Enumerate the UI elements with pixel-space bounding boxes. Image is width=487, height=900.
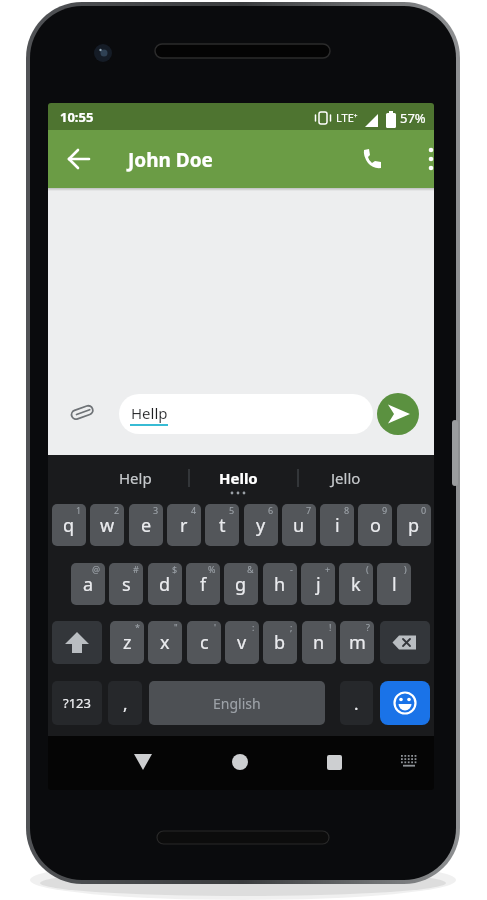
staticText: 6	[268, 504, 274, 516]
staticText: -	[290, 563, 293, 575]
button[interactable]: u	[282, 504, 316, 546]
staticText: y	[256, 513, 266, 538]
button[interactable]	[220, 746, 260, 780]
staticText: 8	[344, 504, 350, 516]
staticText: 3	[153, 504, 159, 516]
button[interactable]: g	[224, 563, 258, 605]
button[interactable]: Hello	[203, 461, 273, 495]
staticText: b	[274, 630, 286, 655]
staticText: ?123	[63, 694, 91, 712]
staticText: u	[293, 513, 305, 538]
staticText: i	[335, 513, 340, 538]
staticText: n	[313, 630, 325, 655]
button[interactable]: s	[109, 563, 143, 605]
staticText: &	[247, 563, 254, 575]
button[interactable]: .	[340, 681, 373, 725]
button[interactable]: x	[148, 621, 182, 664]
button[interactable]	[66, 396, 98, 428]
staticText: .	[354, 692, 359, 715]
button[interactable]: v	[225, 621, 259, 664]
staticText: 7	[306, 504, 312, 516]
button[interactable]: ,	[108, 681, 142, 725]
button[interactable]	[52, 621, 102, 664]
button[interactable]	[380, 681, 430, 725]
staticText: d	[159, 572, 171, 597]
button[interactable]: r	[167, 504, 201, 546]
staticText: m	[349, 630, 366, 655]
button[interactable]: ?123	[52, 681, 102, 725]
button[interactable]: Hellp	[119, 394, 373, 434]
button[interactable]: p	[397, 504, 431, 546]
staticText: 2	[114, 504, 120, 516]
button[interactable]: Jello	[316, 461, 376, 495]
staticText: r	[180, 513, 188, 538]
staticText: ?	[366, 621, 370, 633]
staticText: Jello	[331, 468, 361, 488]
button[interactable]: h	[263, 563, 297, 605]
button[interactable]: f	[186, 563, 220, 605]
button[interactable]: d	[148, 563, 182, 605]
button[interactable]	[355, 142, 389, 176]
staticText: Hello	[219, 468, 258, 488]
staticText: $	[172, 563, 178, 575]
button[interactable]: y	[244, 504, 278, 546]
button[interactable]: c	[187, 621, 221, 664]
staticText: g	[235, 572, 247, 597]
staticText: LTE⁺	[336, 110, 358, 125]
button[interactable]: l	[377, 563, 411, 605]
button[interactable]	[393, 748, 425, 776]
staticText: !	[329, 621, 332, 633]
button[interactable]: j	[301, 563, 335, 605]
staticText: Hellp	[131, 403, 168, 423]
button[interactable]: t	[205, 504, 239, 546]
staticText: o	[370, 513, 381, 538]
button[interactable]: Help	[105, 461, 165, 495]
button[interactable]	[418, 142, 434, 176]
button[interactable]: z	[110, 621, 144, 664]
button[interactable]: a	[71, 563, 105, 605]
staticText: 9	[382, 504, 388, 516]
staticText: '	[214, 621, 217, 633]
button[interactable]	[380, 621, 430, 664]
staticText: 4	[191, 504, 197, 516]
button[interactable]: k	[339, 563, 373, 605]
staticText: j	[316, 572, 321, 597]
button[interactable]	[314, 746, 354, 780]
staticText: 1	[76, 504, 82, 516]
staticText: x	[160, 630, 170, 655]
staticText: f	[200, 572, 207, 597]
staticText: 10:55	[60, 108, 94, 126]
staticText: q	[63, 513, 75, 538]
button[interactable]	[377, 393, 419, 435]
button[interactable]	[123, 746, 163, 780]
staticText: 5	[229, 504, 235, 516]
button[interactable]: n	[302, 621, 336, 664]
staticText: @	[92, 563, 101, 575]
button[interactable]: m	[340, 621, 374, 664]
button[interactable]: b	[263, 621, 297, 664]
staticText: "	[174, 621, 178, 633]
staticText: Help	[119, 468, 152, 488]
button[interactable]: w	[90, 504, 124, 546]
staticText: l	[392, 572, 397, 597]
staticText: John Doe	[128, 147, 213, 173]
staticText: )	[404, 563, 407, 575]
button[interactable]	[62, 142, 96, 176]
staticText: #	[133, 563, 139, 575]
button[interactable]: i	[320, 504, 354, 546]
staticText: a	[83, 572, 94, 597]
staticText: (	[366, 563, 369, 575]
button[interactable]: o	[358, 504, 392, 546]
staticText: t	[219, 513, 226, 538]
staticText: z	[123, 630, 132, 655]
staticText: :	[252, 621, 255, 633]
staticText: ,	[123, 692, 128, 715]
staticText: s	[122, 572, 131, 597]
staticText: ;	[290, 621, 293, 633]
button[interactable]: q	[52, 504, 86, 546]
button[interactable]: e	[129, 504, 163, 546]
staticText: +	[325, 563, 331, 575]
staticText: h	[274, 572, 286, 597]
staticText: English	[213, 694, 261, 713]
button[interactable]: English	[149, 681, 325, 725]
